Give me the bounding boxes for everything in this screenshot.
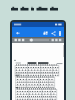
button[interactable]: More options [57, 29, 62, 37]
button[interactable] [12, 43, 64, 100]
button[interactable]: Share [49, 29, 57, 37]
button[interactable]: Transpose [41, 29, 49, 37]
button[interactable]: Back [14, 29, 21, 37]
